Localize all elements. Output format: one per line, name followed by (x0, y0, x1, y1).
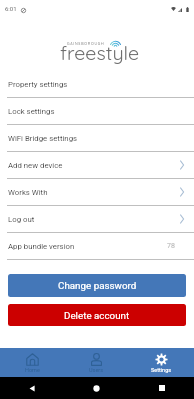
button[interactable]: Back (0, 377, 64, 399)
button[interactable]: Recent apps (129, 377, 194, 399)
staticText: Settings (151, 367, 172, 373)
staticText: WiFi Bridge settings (8, 134, 78, 143)
button[interactable]: Delete account (8, 304, 186, 326)
staticText: Property settings (8, 80, 68, 89)
button[interactable]: Change password (8, 274, 186, 297)
staticText: Works With (8, 188, 48, 197)
button[interactable]: Lock settings (0, 98, 194, 125)
staticText: 6:01 (5, 5, 17, 12)
staticText: Users (89, 367, 104, 373)
button[interactable]: Add new device (0, 152, 194, 179)
staticText: 78 (167, 242, 175, 250)
staticText: Home (25, 367, 40, 373)
button[interactable]: Log out (0, 206, 194, 233)
staticText: App bundle version (8, 242, 75, 251)
button[interactable]: Users (64, 348, 129, 377)
staticText: Lock settings (8, 107, 55, 116)
button[interactable]: Property settings (0, 71, 194, 98)
staticText: Add new device (8, 161, 63, 170)
staticText: Delete account (64, 310, 130, 321)
staticText: Log out (8, 215, 35, 224)
button[interactable]: Works With (0, 179, 194, 206)
button[interactable]: Home (0, 348, 64, 377)
staticText: GAINSBOROUGH (67, 41, 105, 45)
button[interactable]: WiFi Bridge settings (0, 125, 194, 152)
button[interactable]: Settings (129, 348, 194, 377)
staticText: freestyle (60, 40, 140, 65)
staticText: Change password (58, 280, 137, 291)
button[interactable]: Home (64, 377, 129, 399)
